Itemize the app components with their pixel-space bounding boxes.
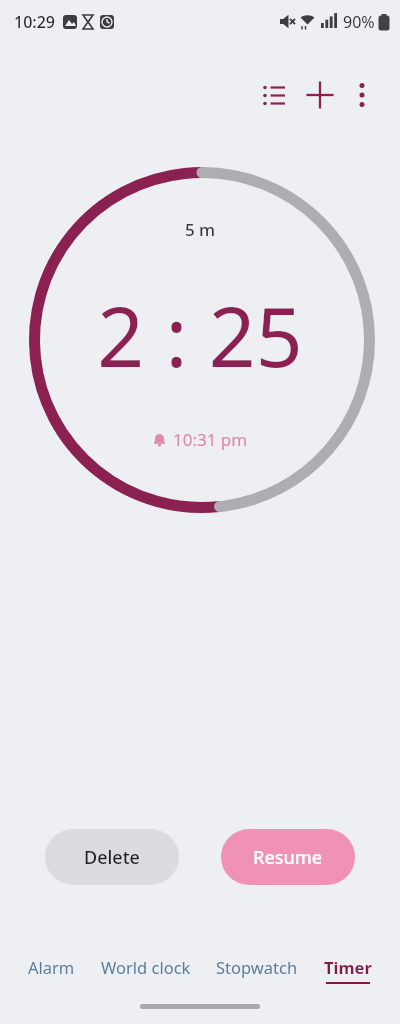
button[interactable] [252, 72, 296, 118]
button[interactable]: Stopwatch [216, 956, 298, 984]
button[interactable]: Resume [221, 829, 355, 885]
staticText: 90% [343, 11, 375, 33]
button[interactable] [296, 72, 344, 118]
staticText: Timer [324, 956, 372, 978]
button[interactable] [344, 72, 380, 118]
button[interactable]: World clock [101, 956, 191, 984]
button[interactable]: Delete [45, 829, 179, 885]
staticText: Resume [253, 845, 323, 870]
staticText: Alarm [28, 956, 75, 978]
staticText: 2 : 25 [0, 279, 400, 391]
staticText: 5 m [0, 218, 400, 241]
staticText: Delete [84, 845, 140, 870]
staticText: 10:31 pm [173, 428, 248, 451]
button[interactable]: Alarm [28, 956, 75, 984]
button[interactable]: Timer [324, 956, 372, 984]
staticText: World clock [101, 956, 191, 978]
staticText: Stopwatch [216, 956, 298, 978]
staticText: 10:29 [14, 11, 55, 33]
